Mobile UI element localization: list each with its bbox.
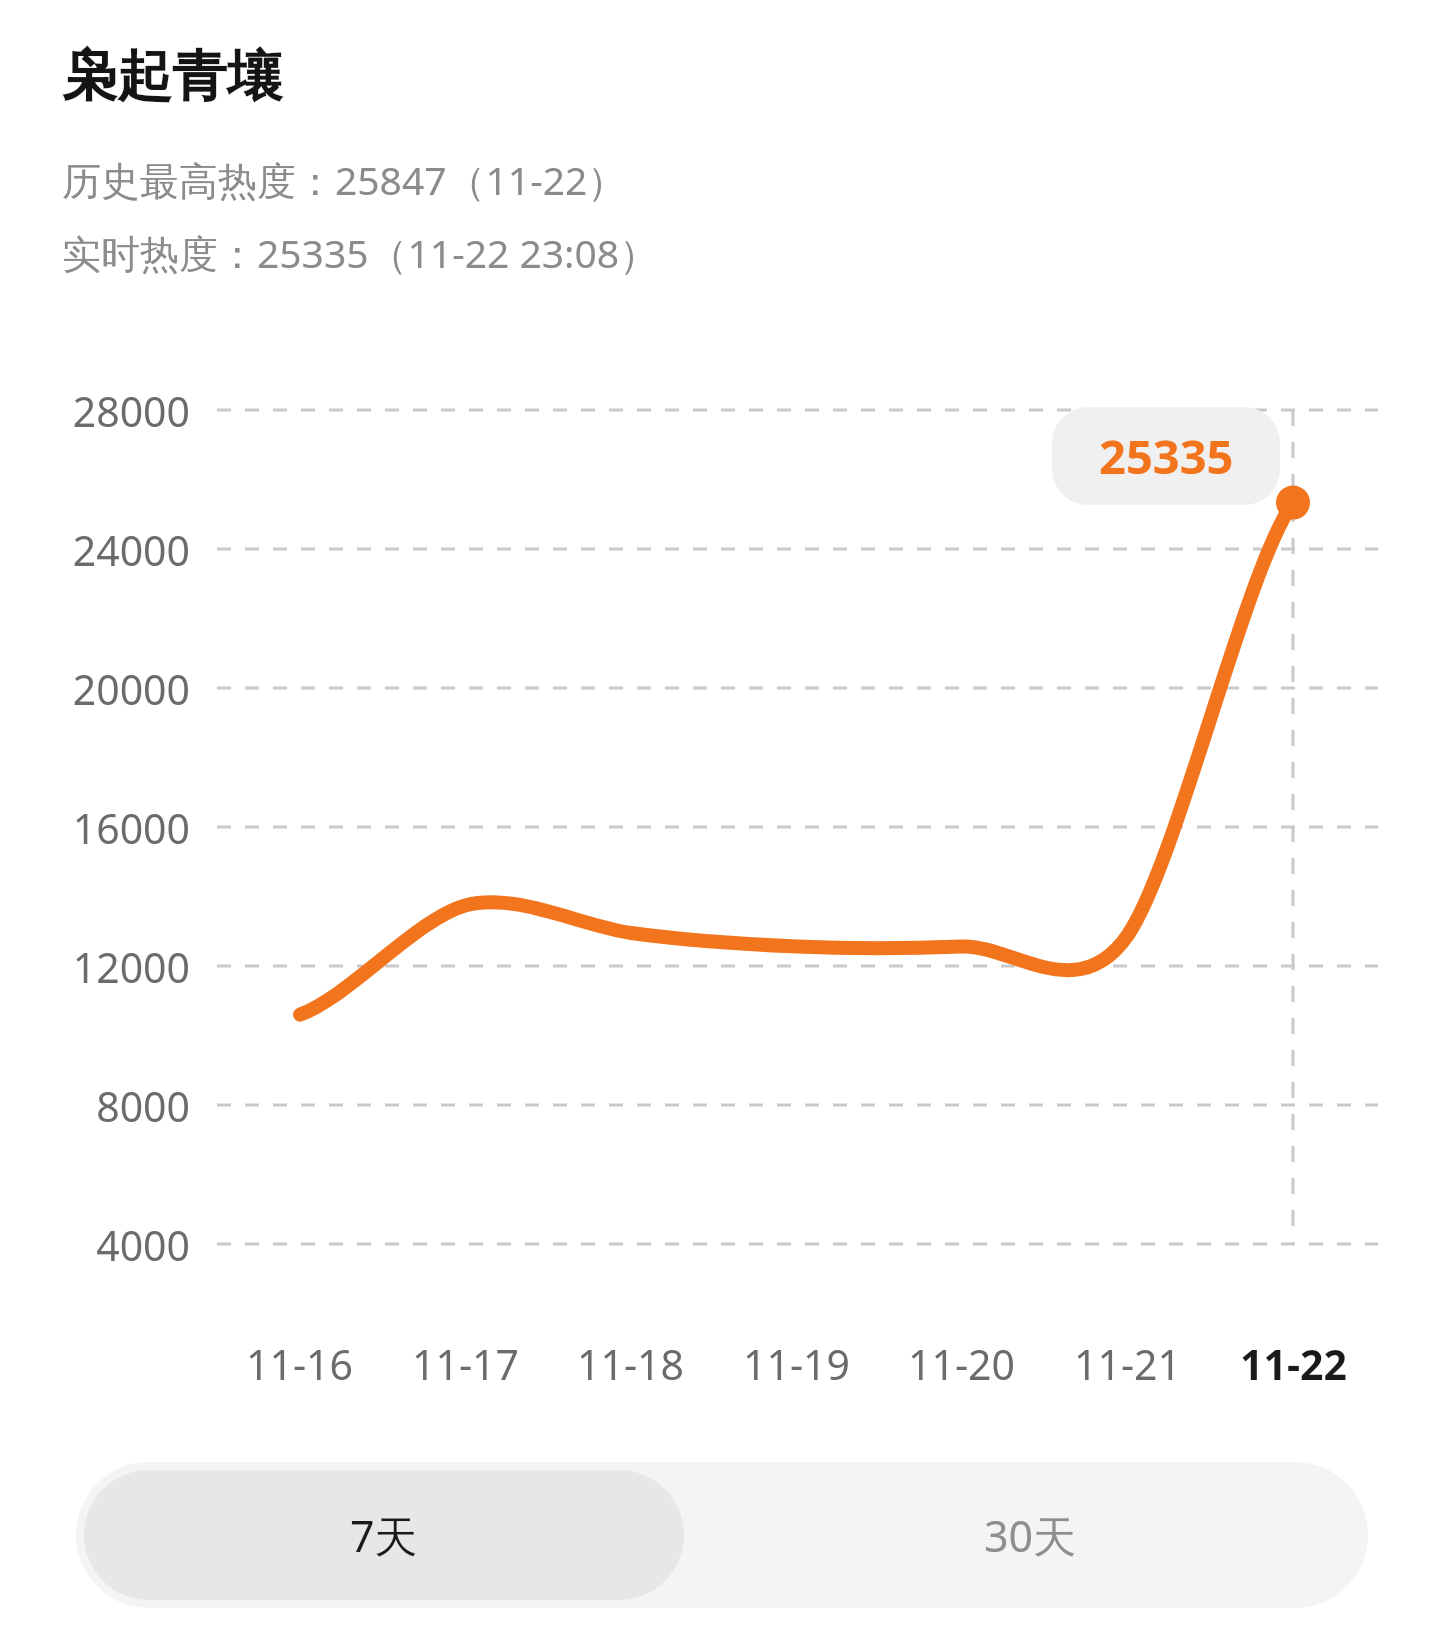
staticText: 11-17	[412, 1336, 520, 1392]
staticText: 28000	[72, 383, 190, 439]
staticText: 11-22	[1240, 1336, 1347, 1392]
staticText: 8000	[96, 1078, 190, 1134]
staticText: 实时热度：25335（11-22 23:08）	[62, 226, 659, 279]
staticText: 11-21	[1074, 1336, 1182, 1392]
staticText: 历史最高热度：25847（11-22）	[62, 153, 627, 206]
staticText: 25335	[1099, 424, 1234, 488]
staticText: 11-20	[908, 1336, 1016, 1392]
staticText: 30天	[984, 1506, 1077, 1565]
staticText: 7天	[350, 1506, 418, 1565]
staticText: 11-19	[743, 1336, 851, 1392]
staticText: 12000	[72, 939, 190, 995]
staticText: 16000	[72, 800, 190, 856]
staticText: 4000	[96, 1217, 190, 1273]
staticText: 11-16	[246, 1336, 354, 1392]
staticText: 11-18	[577, 1336, 685, 1392]
button[interactable]: 30天	[692, 1462, 1368, 1608]
staticText: 枭起青壤	[62, 42, 282, 111]
button[interactable]: 25335	[1052, 407, 1280, 505]
staticText: 20000	[72, 661, 190, 717]
button[interactable]: 7天	[84, 1470, 684, 1600]
staticText: 24000	[72, 522, 190, 578]
